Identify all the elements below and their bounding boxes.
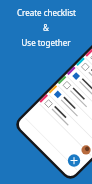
staticText: & <box>43 22 49 33</box>
staticText: Use together <box>21 37 71 48</box>
staticText: Create checklist <box>17 7 76 18</box>
